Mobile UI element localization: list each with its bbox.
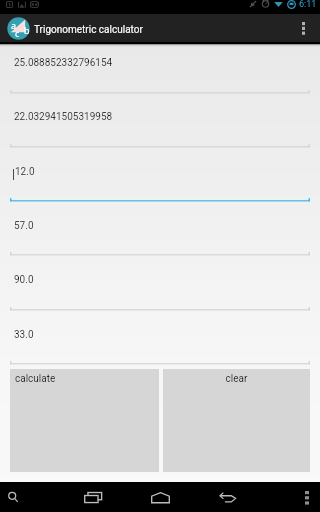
button[interactable]: 12.0 xyxy=(0,153,320,207)
button[interactable]: 57.0 xyxy=(0,207,320,261)
staticText: clear xyxy=(168,373,305,385)
staticText: Trigonometric calculator xyxy=(34,24,143,36)
staticText: 22.032941505319958 xyxy=(14,111,113,123)
button[interactable]: More options xyxy=(294,482,320,512)
button[interactable]: Home xyxy=(140,482,180,512)
button[interactable]: Search xyxy=(0,482,26,512)
button[interactable]: Recent apps xyxy=(73,482,113,512)
button[interactable]: 90.0 xyxy=(0,261,320,315)
staticText: a xyxy=(11,19,17,31)
staticText: 25.088852332796154 xyxy=(14,57,113,69)
staticText: 6:11 xyxy=(299,0,317,10)
button[interactable]: calculate xyxy=(10,369,159,472)
staticText: 12.0 xyxy=(15,166,35,178)
staticText: calculate xyxy=(15,373,154,385)
staticText: 90.0 xyxy=(14,274,34,286)
staticText: 57.0 xyxy=(14,220,34,232)
button[interactable]: 33.0 xyxy=(0,316,320,370)
button[interactable]: Back xyxy=(208,482,248,512)
staticText: 33.0 xyxy=(14,329,34,341)
button[interactable]: 22.032941505319958 xyxy=(0,98,320,152)
staticText: b xyxy=(24,24,30,36)
staticText: c xyxy=(15,27,20,39)
button[interactable]: clear xyxy=(163,369,310,472)
button[interactable]: More options xyxy=(287,14,320,42)
button[interactable]: 25.088852332796154 xyxy=(0,44,320,98)
